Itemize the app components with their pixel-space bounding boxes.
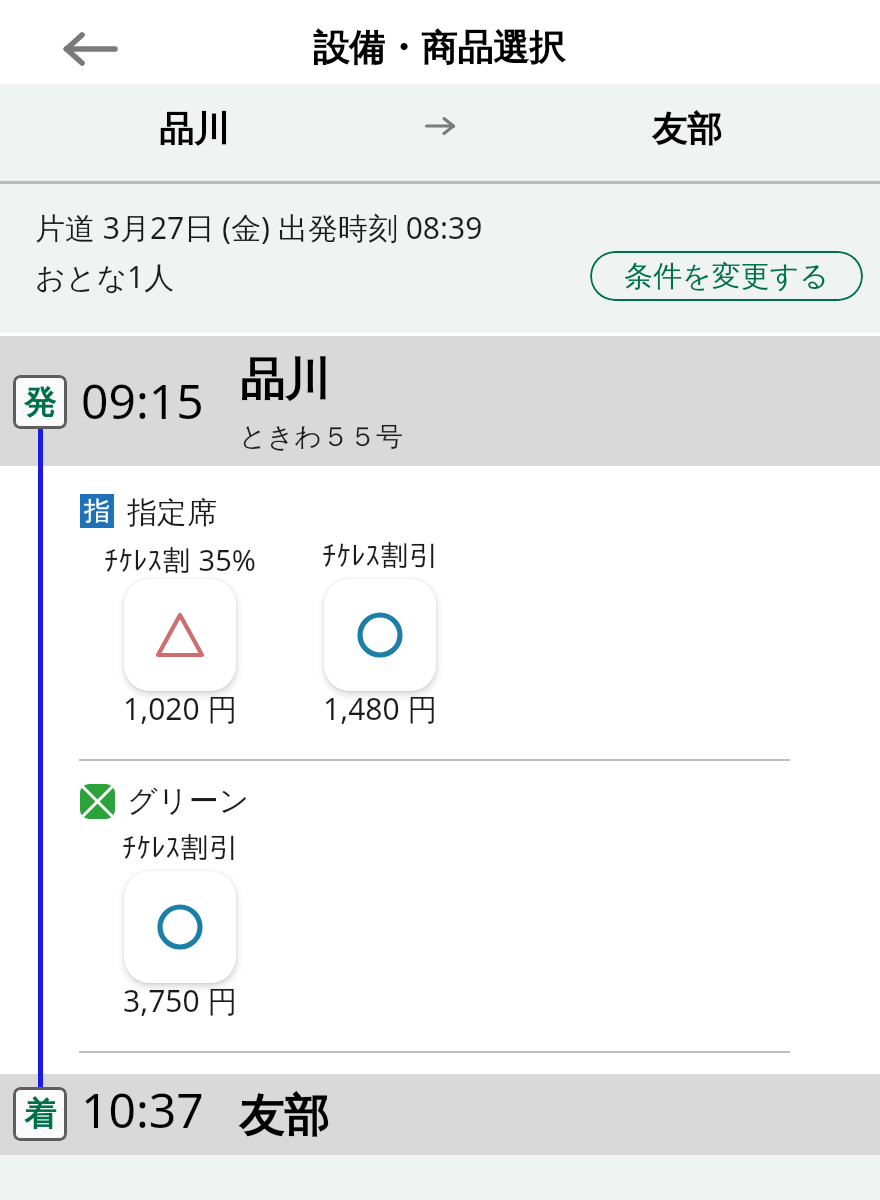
staticText: 1,020 円 — [123, 688, 238, 728]
staticText: 1,480 円 — [323, 688, 438, 728]
button[interactable]: ﾁｹﾚｽ割引 3,750 円 available — [124, 871, 236, 983]
staticText: 着 — [24, 1094, 56, 1134]
button[interactable]: ﾁｹﾚｽ割引 1,480 円 available — [324, 579, 436, 691]
staticText: 条件を変更する — [624, 258, 830, 295]
staticText: ﾁｹﾚｽ割引 — [122, 832, 238, 861]
staticText: ﾁｹﾚｽ割引 — [322, 540, 438, 569]
staticText: 品川 — [240, 352, 330, 409]
staticText: 友部 — [652, 107, 722, 151]
button[interactable]: ﾁｹﾚｽ割 35% 1,020 円 few seats left — [124, 579, 236, 691]
button[interactable]: 09:15 — [0, 336, 880, 466]
staticText: ﾁｹﾚｽ割 35% — [104, 540, 256, 574]
staticText: 品川 — [159, 107, 229, 151]
staticText: 10:37 — [81, 1077, 204, 1142]
staticText: おとな1人 — [35, 256, 175, 297]
staticText: 片道 3月27日 (金) 出発時刻 08:39 — [35, 207, 483, 248]
button[interactable]: 10:37 — [0, 1074, 880, 1155]
button[interactable]: 品川 — [0, 84, 880, 181]
staticText: 設備・商品選択 — [313, 25, 565, 70]
staticText: ときわ５５号 — [239, 420, 403, 454]
staticText: 指定席 — [127, 494, 217, 532]
staticText: 友部 — [239, 1088, 329, 1145]
button[interactable]: Back — [62, 21, 118, 77]
staticText: 09:15 — [81, 368, 204, 433]
staticText: 指 — [84, 495, 110, 528]
staticText: 3,750 円 — [123, 980, 238, 1020]
staticText: グリーン — [127, 782, 250, 820]
staticText: 発 — [24, 382, 56, 422]
button[interactable]: 条件を変更する — [590, 251, 863, 301]
